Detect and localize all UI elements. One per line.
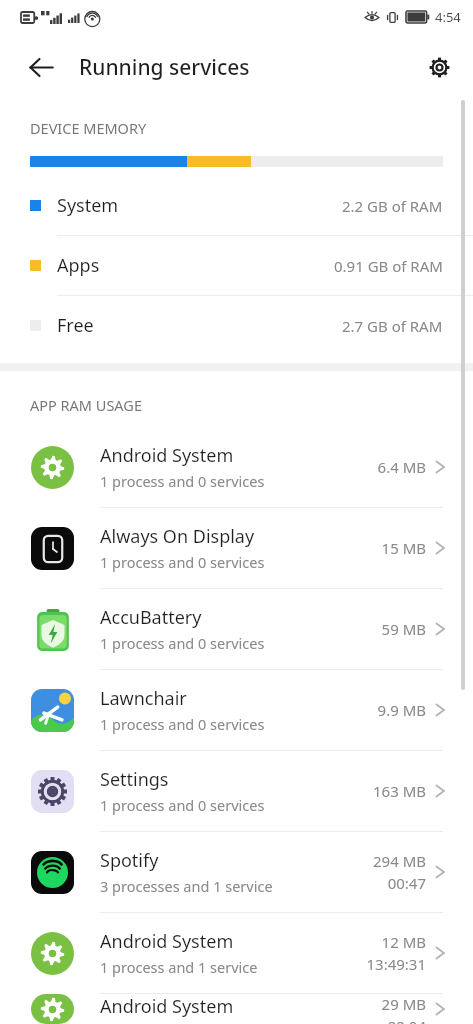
staticText: Apps [57,253,100,278]
staticText: DEVICE MEMORY [30,118,147,138]
staticText: 9.9 MB [377,700,426,720]
staticText: Lawnchair [100,686,187,711]
button[interactable]: System [0,176,473,236]
staticText: 29 MB [381,994,426,1014]
staticText: APP RAM USAGE [30,395,142,415]
button[interactable]: Settings [0,751,473,831]
staticText: 6.4 MB [377,457,426,477]
staticText: Settings [100,767,169,792]
staticText: 00:47 [387,873,426,893]
staticText: 1 process and 0 services [100,471,265,491]
staticText: 1 process and 0 services [100,633,265,653]
staticText: Android System [100,443,234,468]
staticText: Running services [79,53,250,82]
staticText: 1 process and 0 services [100,714,265,734]
staticText: Android System [100,929,234,954]
button[interactable]: Free [0,296,473,355]
staticText: Spotify [100,848,159,873]
button[interactable]: Android System [0,427,473,507]
staticText: Android System [100,994,234,1019]
staticText: 0.91 GB of RAM [334,256,443,276]
staticText: 2.7 GB of RAM [342,316,443,336]
staticText: 1 process and 1 service [100,957,258,977]
button[interactable]: Android System [0,994,473,1024]
staticText: 1 process and 0 services [100,795,265,815]
button[interactable]: Spotify [0,832,473,912]
button[interactable]: Apps [0,236,473,296]
button[interactable]: AccuBattery [0,589,473,669]
button[interactable]: Back [17,43,65,91]
staticText: 59 MB [381,619,426,639]
button[interactable]: Settings [415,43,463,91]
staticText: 294 MB [373,851,426,871]
staticText: Always On Display [100,524,255,549]
staticText: 3 processes and 1 service [100,876,273,896]
staticText: AccuBattery [100,605,202,630]
button[interactable]: Android System [0,913,473,993]
staticText: 1 process and 0 services [100,552,265,572]
button[interactable]: Always On Display [0,508,473,588]
button[interactable]: Lawnchair [0,670,473,750]
staticText: 15 MB [381,538,426,558]
staticText: 12 MB [381,932,426,952]
staticText: 2.2 GB of RAM [342,196,443,216]
staticText: 4:54 [435,8,461,26]
staticText: 163 MB [373,781,426,801]
staticText: Free [57,313,94,338]
staticText: System [57,193,119,218]
staticText: 13:49:31 [366,954,426,974]
staticText: 22:04 [387,1016,426,1024]
